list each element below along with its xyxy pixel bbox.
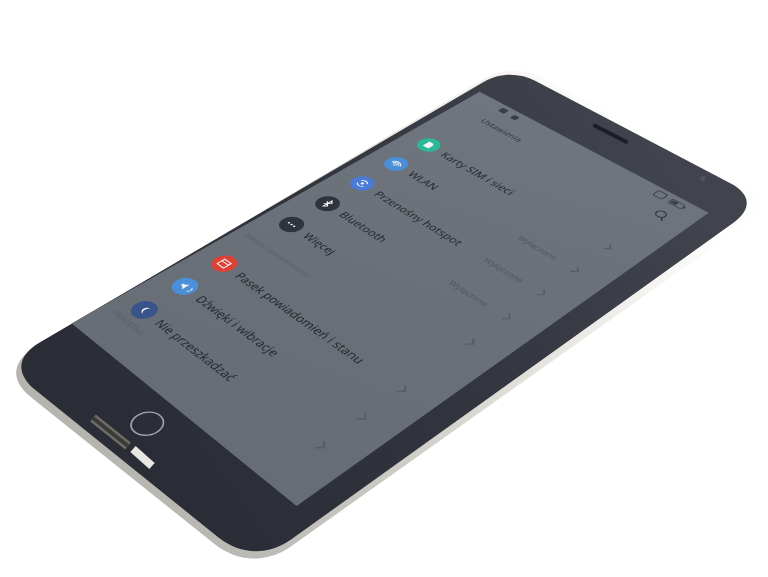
button[interactable]: Phone showing Android settings list	[0, 0, 768, 577]
